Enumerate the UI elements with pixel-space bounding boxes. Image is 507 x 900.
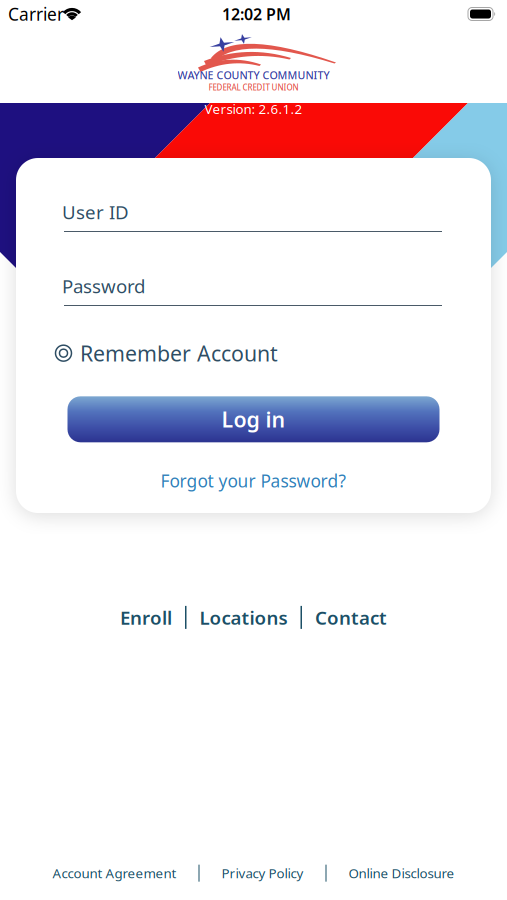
button[interactable]: Account Agreement	[52, 864, 176, 882]
staticText: Password	[62, 274, 145, 298]
button[interactable]: Enroll	[120, 605, 172, 630]
staticText: Carrier	[8, 2, 64, 25]
staticText: User ID	[62, 200, 129, 224]
button[interactable]: Locations	[199, 605, 287, 630]
staticText: Locations	[199, 605, 287, 630]
staticText: Contact	[315, 605, 387, 630]
staticText: FEDERAL CREDIT UNION	[208, 82, 298, 93]
button[interactable]: Remember Account	[16, 339, 278, 367]
staticText: Version: 2.6.1.2	[204, 100, 302, 118]
button[interactable]: Forgot your Password?	[160, 469, 346, 492]
staticText: 12:02 PM	[222, 3, 291, 25]
staticText: Log in	[221, 405, 285, 433]
button[interactable]: Privacy Policy	[221, 864, 303, 882]
staticText: Online Disclosure	[348, 864, 454, 882]
button[interactable]: Contact	[315, 605, 387, 630]
button[interactable]: User ID	[16, 202, 491, 232]
staticText: Remember Account	[80, 339, 278, 367]
staticText: Privacy Policy	[221, 864, 303, 882]
staticText: Enroll	[120, 605, 172, 630]
button[interactable]: Password	[16, 276, 491, 306]
staticText: Forgot your Password?	[160, 469, 346, 492]
staticText: Account Agreement	[52, 864, 176, 882]
button[interactable]: Online Disclosure	[348, 864, 454, 882]
staticText: WAYNE COUNTY COMMUNITY	[177, 68, 329, 82]
button[interactable]: Log in	[67, 396, 439, 442]
